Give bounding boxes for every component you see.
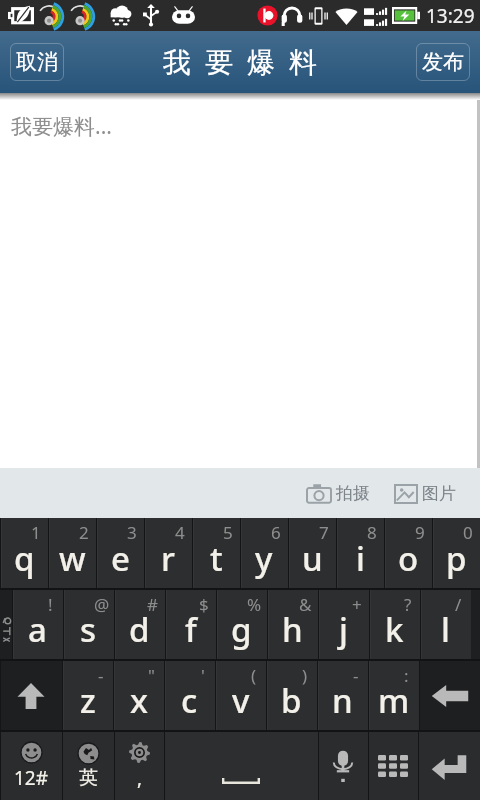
staticText: d [129,607,150,652]
button[interactable]: 图片 [390,479,460,508]
button[interactable]: 发布 [416,43,470,81]
button[interactable]: 7 [288,518,336,588]
button[interactable]: XT9 [0,590,12,659]
button[interactable]: ! [12,590,63,659]
staticText: 要 [205,45,233,80]
button[interactable]: Backspace [419,661,480,730]
button[interactable]: : [368,661,419,730]
staticText: 9 [415,521,425,544]
button[interactable]: 拍摄 [302,479,374,508]
staticText: - [98,664,104,687]
button[interactable]: & [267,590,318,659]
staticText: $ [199,593,209,616]
staticText: 我要爆料... [11,112,112,141]
staticText: c [181,678,198,723]
staticText: + [352,593,362,616]
button[interactable]: - [62,661,113,730]
staticText: 5 [223,521,233,544]
staticText: p [446,536,467,581]
staticText: 料 [289,45,317,80]
staticText: t [210,536,223,581]
button[interactable]: 3 [96,518,144,588]
staticText: e [111,536,130,581]
button[interactable]: ? [369,590,420,659]
staticText: 英 [79,766,98,790]
staticText: 我 [163,45,191,80]
staticText: r [161,536,175,581]
button[interactable]: % [216,590,267,659]
button[interactable]: / [420,590,471,659]
button[interactable]: ' [164,661,215,730]
button[interactable]: Enter [418,732,480,800]
button[interactable]: " [113,661,164,730]
button[interactable]: Voice input [318,732,368,800]
staticText: j [339,607,348,652]
button[interactable]: + [318,590,369,659]
staticText: - [353,664,359,687]
staticText: 4 [175,521,185,544]
staticText: g [231,607,252,652]
button[interactable]: ( [215,661,266,730]
staticText: m [378,678,410,723]
staticText: u [302,536,323,581]
button[interactable]: Keypad [368,732,418,800]
staticText: s [80,607,97,652]
button[interactable]: @ [63,590,114,659]
staticText: i [356,536,365,581]
staticText: 图片 [422,483,456,504]
staticText: v [232,678,250,723]
staticText: 0 [463,521,473,544]
staticText: w [59,536,86,581]
staticText: h [282,607,303,652]
button[interactable]: $ [165,590,216,659]
staticText: " [148,664,155,687]
staticText: ! [48,593,53,616]
staticText: , [137,765,143,791]
staticText: : [404,664,409,687]
staticText: n [332,678,353,723]
staticText: 8 [367,521,377,544]
button[interactable]: Shift [0,661,62,730]
button[interactable]: Settings [114,732,164,800]
staticText: 2 [79,521,89,544]
staticText: / [455,593,462,616]
button[interactable]: 8 [336,518,384,588]
button[interactable]: Space [164,732,318,800]
staticText: 7 [319,521,329,544]
staticText: 3 [127,521,137,544]
button[interactable]: Language [62,732,114,800]
staticText: z [80,678,96,723]
staticText: ) [302,664,308,687]
staticText: b [281,678,302,723]
button[interactable]: 取消 [10,43,64,81]
staticText: a [28,607,47,652]
staticText: y [255,536,273,581]
staticText: ' [201,664,205,687]
button[interactable]: 6 [240,518,288,588]
button[interactable]: 2 [48,518,96,588]
button[interactable]: 5 [192,518,240,588]
button[interactable]: 4 [144,518,192,588]
button[interactable]: # [114,590,165,659]
button[interactable]: ) [266,661,317,730]
staticText: 发布 [422,49,464,75]
staticText: # [147,593,158,616]
staticText: 爆 [247,45,275,80]
button[interactable]: - [317,661,368,730]
staticText: x [130,678,148,723]
button[interactable]: Symbols 12# [0,732,62,800]
button[interactable]: 1 [0,518,48,588]
staticText: 12# [14,765,49,791]
staticText: f [185,607,197,652]
staticText: 6 [271,521,281,544]
staticText: @ [94,593,110,616]
staticText: & [299,593,312,616]
button[interactable]: 9 [384,518,432,588]
staticText: 取消 [16,49,58,75]
staticText: ? [404,593,412,616]
staticText: 拍摄 [336,483,370,504]
staticText: q [14,536,35,581]
button[interactable]: 0 [432,518,480,588]
staticText: l [441,607,450,652]
